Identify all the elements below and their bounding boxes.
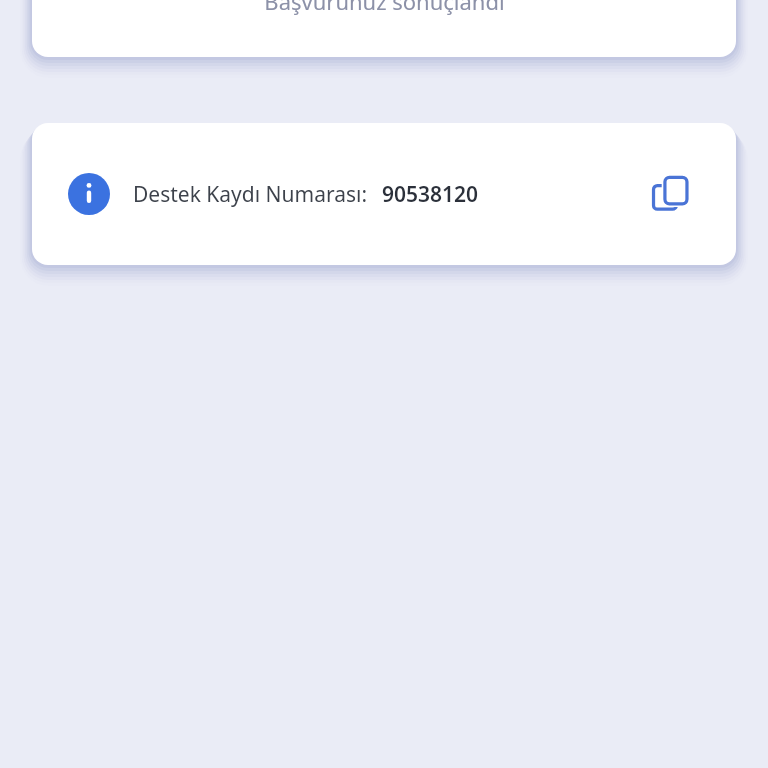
staticText: 90538120 (382, 180, 479, 209)
button[interactable]: Başvurunuz sonuçlandı (32, 0, 736, 57)
staticText: Başvurunuz sonuçlandı (264, 0, 505, 16)
button[interactable]: Kopyala (648, 171, 694, 217)
button[interactable]: Destek Kaydı Numarası: (32, 123, 736, 265)
staticText: Destek Kaydı Numarası: (133, 180, 368, 209)
